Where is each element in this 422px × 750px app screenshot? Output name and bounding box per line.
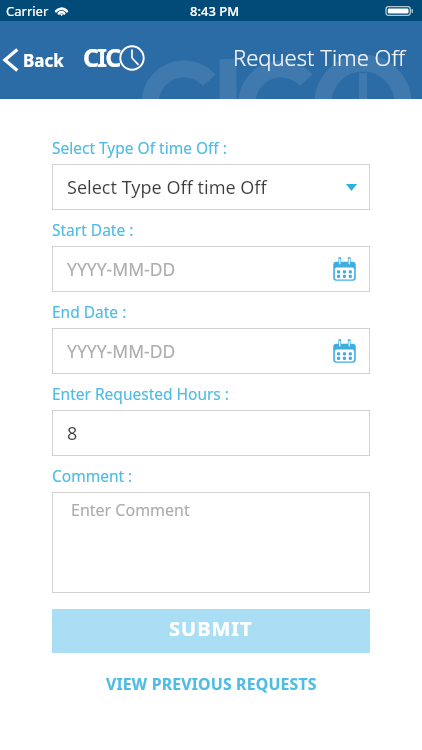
- button[interactable]: Enter Comment: [52, 492, 370, 593]
- staticText: SUBMIT: [169, 615, 253, 642]
- other: Pick date: [332, 339, 357, 364]
- button[interactable]: SUBMIT: [52, 609, 370, 653]
- staticText: Select Type Of time Off :: [52, 137, 227, 158]
- staticText: YYYY-MM-DD: [67, 257, 176, 281]
- staticText: YYYY-MM-DD: [67, 339, 176, 363]
- staticText: 8: [67, 421, 78, 446]
- staticText: Enter Requested Hours :: [52, 383, 229, 404]
- staticText: Back: [23, 49, 64, 72]
- button[interactable]: VIEW PREVIOUS REQUESTS: [52, 669, 370, 699]
- staticText: VIEW PREVIOUS REQUESTS: [106, 673, 317, 695]
- button[interactable]: 8: [52, 410, 370, 456]
- staticText: CIC: [83, 40, 120, 74]
- staticText: Enter Comment: [71, 499, 190, 521]
- staticText: Select Type Off time Off: [67, 175, 267, 200]
- staticText: Request Time Off: [233, 42, 405, 72]
- button[interactable]: Back: [0, 41, 70, 80]
- staticText: Start Date :: [52, 219, 134, 240]
- button[interactable]: YYYY-MM-DD: [52, 328, 370, 374]
- staticText: Comment :: [52, 465, 133, 486]
- button[interactable]: Select Type Off time Off: [52, 164, 370, 210]
- staticText: End Date :: [52, 301, 127, 322]
- other: Pick date: [332, 257, 357, 282]
- button[interactable]: YYYY-MM-DD: [52, 246, 370, 292]
- staticText: 8:43 PM: [190, 2, 240, 20]
- staticText: Carrier: [6, 2, 49, 20]
